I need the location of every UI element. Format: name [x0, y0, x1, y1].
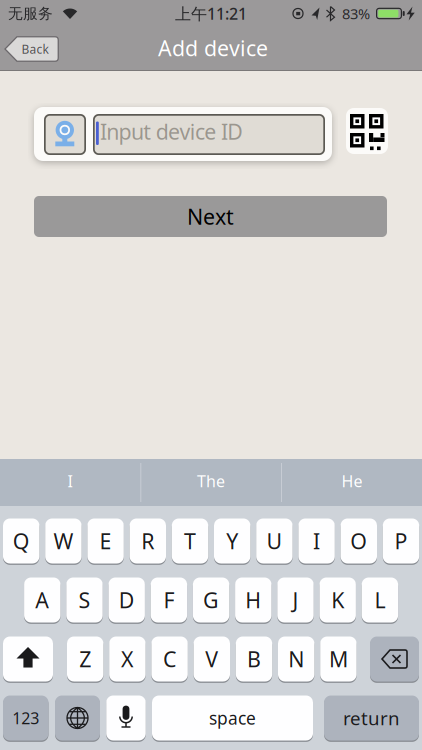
- staticText: X: [121, 645, 134, 673]
- staticText: Input device ID: [100, 117, 243, 146]
- button[interactable]: A: [24, 576, 60, 623]
- staticText: 上午11:21: [175, 3, 247, 24]
- button[interactable]: B: [236, 635, 272, 682]
- staticText: R: [141, 527, 154, 555]
- button[interactable]: F: [151, 576, 187, 623]
- button[interactable]: R: [130, 517, 166, 564]
- button[interactable]: Y: [214, 517, 250, 564]
- button[interactable]: [346, 108, 388, 154]
- staticText: N: [288, 645, 304, 673]
- button[interactable]: H: [235, 576, 271, 623]
- staticText: A: [35, 586, 49, 614]
- staticText: Y: [226, 527, 238, 555]
- button[interactable]: X: [109, 635, 146, 682]
- staticText: J: [292, 586, 298, 614]
- staticText: The: [197, 470, 225, 492]
- button[interactable]: S: [66, 576, 103, 623]
- button[interactable]: M: [320, 635, 357, 682]
- staticText: D: [119, 586, 135, 614]
- button[interactable]: N: [278, 635, 314, 682]
- button[interactable]: V: [194, 635, 230, 682]
- staticText: E: [100, 527, 112, 555]
- staticText: space: [209, 706, 256, 729]
- staticText: return: [343, 706, 400, 730]
- button[interactable]: C: [151, 635, 188, 682]
- button[interactable]: Z: [67, 635, 103, 682]
- staticText: Next: [187, 202, 234, 231]
- staticText: Add device: [158, 34, 268, 62]
- staticText: I: [67, 470, 72, 492]
- button[interactable]: K: [319, 576, 356, 623]
- button[interactable]: O: [341, 517, 377, 564]
- button[interactable]: [370, 635, 419, 682]
- button[interactable]: space: [152, 694, 313, 741]
- staticText: L: [374, 586, 385, 614]
- staticText: H: [245, 586, 261, 614]
- staticText: S: [78, 586, 90, 614]
- button[interactable]: I: [298, 517, 335, 564]
- staticText: P: [394, 527, 407, 555]
- staticText: V: [205, 645, 218, 673]
- staticText: Z: [79, 645, 91, 673]
- button[interactable]: P: [383, 517, 419, 564]
- staticText: Back: [21, 41, 48, 57]
- button[interactable]: U: [256, 517, 293, 564]
- button[interactable]: Q: [3, 517, 39, 564]
- staticText: T: [184, 527, 196, 555]
- staticText: Q: [13, 527, 30, 555]
- button[interactable]: [3, 635, 53, 682]
- staticText: F: [163, 586, 174, 614]
- button[interactable]: return: [324, 694, 419, 741]
- button[interactable]: [106, 694, 146, 741]
- staticText: B: [247, 645, 261, 673]
- button[interactable]: L: [362, 576, 398, 623]
- staticText: 123: [12, 707, 39, 729]
- button[interactable]: [55, 694, 100, 741]
- button[interactable]: Next: [34, 196, 387, 237]
- staticText: M: [329, 645, 348, 673]
- button[interactable]: 123: [3, 694, 48, 741]
- staticText: 83%: [342, 4, 370, 23]
- button[interactable]: He: [282, 457, 422, 504]
- button[interactable]: Back: [4, 36, 60, 62]
- staticText: W: [53, 527, 73, 555]
- button[interactable]: I: [0, 457, 140, 504]
- button[interactable]: D: [108, 576, 145, 623]
- button[interactable]: Input device ID: [34, 107, 332, 161]
- staticText: C: [163, 645, 176, 673]
- button[interactable]: J: [277, 576, 314, 623]
- staticText: 无服务: [8, 4, 53, 22]
- staticText: U: [266, 527, 282, 555]
- button[interactable]: G: [193, 576, 229, 623]
- button[interactable]: The: [141, 457, 281, 504]
- button[interactable]: W: [45, 517, 82, 564]
- staticText: He: [341, 470, 362, 492]
- staticText: G: [203, 586, 219, 614]
- staticText: I: [313, 527, 320, 555]
- button[interactable]: T: [172, 517, 208, 564]
- staticText: K: [331, 586, 344, 614]
- button[interactable]: E: [87, 517, 124, 564]
- staticText: O: [350, 527, 367, 555]
